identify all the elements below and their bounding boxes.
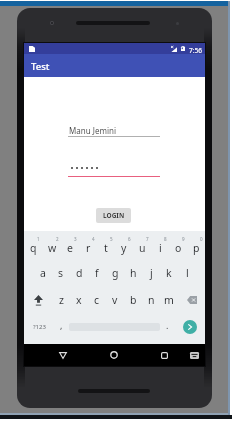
staticText: 3 bbox=[74, 236, 77, 242]
button[interactable]: 0 bbox=[187, 234, 205, 260]
staticText: a bbox=[40, 266, 46, 280]
staticText: LOGIN bbox=[103, 211, 125, 220]
staticText: z bbox=[59, 293, 64, 307]
staticText: 0 bbox=[200, 236, 203, 242]
staticText: l bbox=[186, 266, 189, 280]
button[interactable]: 3 bbox=[61, 234, 79, 260]
staticText: 7 bbox=[146, 236, 149, 242]
button[interactable]: b bbox=[124, 287, 142, 313]
button[interactable]: j bbox=[142, 260, 160, 286]
staticText: e bbox=[67, 241, 73, 255]
button[interactable]: m bbox=[160, 287, 178, 313]
button[interactable]: a bbox=[33, 260, 52, 286]
button[interactable]: 8 bbox=[151, 234, 169, 260]
staticText: x bbox=[76, 293, 82, 307]
button[interactable]: Shift bbox=[24, 287, 52, 313]
staticText: 7:56 bbox=[189, 46, 202, 55]
staticText: , bbox=[60, 319, 63, 331]
staticText: c bbox=[94, 293, 100, 307]
button[interactable]: n bbox=[142, 287, 160, 313]
staticText: . bbox=[166, 319, 169, 331]
button[interactable]: l bbox=[178, 260, 196, 286]
button[interactable]: v bbox=[106, 287, 124, 313]
staticText: k bbox=[166, 266, 172, 280]
staticText: s bbox=[58, 266, 64, 280]
staticText: ?123 bbox=[33, 323, 46, 331]
button[interactable]: Enter bbox=[183, 320, 197, 334]
button[interactable]: Backspace bbox=[178, 287, 205, 313]
button[interactable]: ?123 bbox=[24, 314, 54, 340]
button[interactable]: f bbox=[88, 260, 106, 286]
staticText: 6 bbox=[128, 236, 131, 242]
staticText: b bbox=[130, 293, 137, 307]
button[interactable]: 4 bbox=[79, 234, 97, 260]
staticText: o bbox=[175, 241, 182, 255]
button[interactable]: Recents bbox=[155, 346, 173, 364]
button[interactable]: 2 bbox=[43, 234, 61, 260]
staticText: w bbox=[48, 241, 57, 255]
staticText: q bbox=[30, 241, 37, 255]
button[interactable]: Home bbox=[105, 346, 123, 364]
staticText: Manu Jemini bbox=[69, 125, 116, 136]
button[interactable]: 5 bbox=[97, 234, 115, 260]
button[interactable]: k bbox=[160, 260, 178, 286]
button[interactable]: g bbox=[106, 260, 124, 286]
staticText: i bbox=[159, 241, 162, 255]
staticText: m bbox=[164, 293, 174, 307]
staticText: h bbox=[130, 266, 137, 280]
staticText: p bbox=[193, 241, 200, 255]
staticText: v bbox=[112, 293, 118, 307]
staticText: 1 bbox=[37, 236, 40, 242]
button[interactable]: 9 bbox=[169, 234, 187, 260]
button[interactable]: LOGIN bbox=[96, 208, 131, 223]
staticText: 4 bbox=[92, 236, 95, 242]
button[interactable]: x bbox=[70, 287, 88, 313]
staticText: n bbox=[148, 293, 155, 307]
button[interactable]: 1 bbox=[24, 234, 43, 260]
staticText: r bbox=[86, 241, 91, 255]
button[interactable]: Back bbox=[54, 346, 72, 364]
button[interactable]: d bbox=[70, 260, 88, 286]
button[interactable]: Test bbox=[24, 54, 205, 77]
staticText: j bbox=[150, 266, 153, 280]
staticText: 9 bbox=[182, 236, 185, 242]
button[interactable]: s bbox=[52, 260, 70, 286]
button[interactable]: . bbox=[160, 314, 175, 340]
staticText: 5 bbox=[110, 236, 113, 242]
staticText: 2 bbox=[56, 236, 59, 242]
button[interactable]: z bbox=[52, 287, 70, 313]
staticText: Test bbox=[31, 60, 50, 73]
staticText: u bbox=[139, 241, 146, 255]
button[interactable]: 7 bbox=[133, 234, 151, 260]
staticText: g bbox=[112, 266, 119, 280]
button[interactable]: h bbox=[124, 260, 142, 286]
staticText: d bbox=[76, 266, 83, 280]
staticText: t bbox=[104, 241, 108, 255]
button[interactable]: c bbox=[88, 287, 106, 313]
button[interactable]: 6 bbox=[115, 234, 133, 260]
staticText: 8 bbox=[164, 236, 167, 242]
staticText: y bbox=[121, 241, 127, 255]
button[interactable]: Hide keyboard bbox=[185, 346, 203, 364]
staticText: f bbox=[95, 266, 99, 280]
button[interactable]: , bbox=[54, 314, 69, 340]
